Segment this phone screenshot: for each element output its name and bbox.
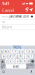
staticText: u <box>22 50 24 53</box>
button[interactable]: x <box>9 59 12 63</box>
button[interactable]: a <box>2 54 5 58</box>
staticText: k <box>27 55 28 58</box>
button[interactable]: z <box>5 59 8 63</box>
staticText: q <box>1 50 3 53</box>
staticText: h <box>20 55 22 58</box>
button[interactable]: 123 <box>0 64 5 68</box>
staticText: jane@mail.com <box>9 15 28 18</box>
button[interactable]: o <box>28 49 31 53</box>
button[interactable]: Shift <box>0 59 5 63</box>
button[interactable]: r <box>11 49 14 53</box>
button[interactable]: Delete <box>30 59 34 63</box>
staticText: w <box>4 50 6 53</box>
button[interactable]: d <box>9 54 12 58</box>
staticText: j <box>24 55 25 58</box>
staticText: p <box>32 50 34 53</box>
staticText: a <box>3 55 4 58</box>
button[interactable]: Attach file <box>25 8 29 13</box>
button[interactable]: m <box>27 59 30 63</box>
button[interactable]: Switch keyboard <box>1 69 6 74</box>
button[interactable]: k <box>26 54 29 58</box>
button[interactable]: b <box>19 59 23 63</box>
button[interactable]: q <box>0 49 3 53</box>
staticText: Subject <box>2 25 12 29</box>
button[interactable]: n <box>23 59 26 63</box>
staticText: return <box>26 63 34 70</box>
button[interactable]: v <box>16 59 19 63</box>
staticText: To <box>2 20 5 24</box>
staticText: 123 <box>1 63 5 70</box>
button[interactable]: y <box>18 49 21 53</box>
staticText: Hello <box>13 46 21 49</box>
staticText: space <box>12 65 19 68</box>
button[interactable]: Cancel <box>2 7 15 13</box>
button[interactable]: space <box>6 64 26 68</box>
button[interactable]: t <box>14 49 17 53</box>
staticText: l <box>31 55 32 58</box>
button[interactable]: c <box>12 59 15 63</box>
staticText: z <box>6 60 7 63</box>
staticText: e <box>8 50 10 53</box>
staticText: d <box>9 55 11 58</box>
staticText: c <box>13 60 14 63</box>
button[interactable]: l <box>30 54 33 58</box>
staticText: o <box>29 50 31 53</box>
button[interactable]: e <box>7 49 10 53</box>
button[interactable]: f <box>12 54 15 58</box>
staticText: b <box>20 60 22 63</box>
button[interactable]: u <box>21 49 24 53</box>
button[interactable]: p <box>32 49 35 53</box>
button[interactable]: s <box>6 54 9 58</box>
staticText: g <box>16 55 18 58</box>
staticText: y <box>19 50 20 53</box>
button[interactable]: w <box>4 49 7 53</box>
staticText: v <box>17 60 18 63</box>
staticText: s <box>7 55 8 58</box>
button[interactable]: j <box>23 54 26 58</box>
staticText: 9:41 <box>2 1 9 6</box>
staticText: i <box>26 50 27 53</box>
staticText: n <box>24 60 26 63</box>
staticText: Cancel <box>2 8 14 13</box>
staticText: x <box>10 60 11 63</box>
staticText: t <box>15 50 16 53</box>
button[interactable]: return <box>26 64 34 68</box>
button[interactable]: g <box>16 54 19 58</box>
staticText: r <box>12 50 13 53</box>
button[interactable]: h <box>19 54 22 58</box>
button[interactable]: Dictate <box>29 69 34 74</box>
staticText: m <box>27 60 29 63</box>
button[interactable]: i <box>25 49 28 53</box>
button[interactable]: Send <box>29 8 33 13</box>
staticText: From <box>2 15 8 18</box>
